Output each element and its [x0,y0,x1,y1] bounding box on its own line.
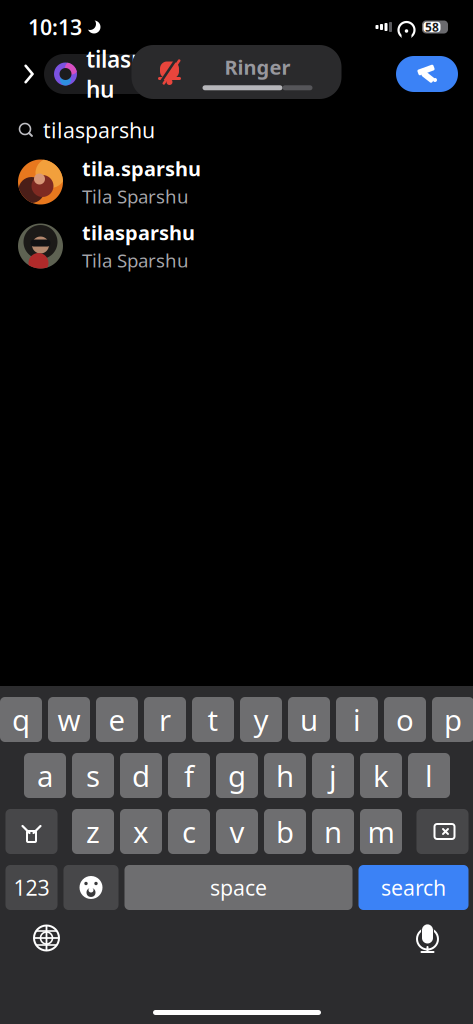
button[interactable]: f [168,753,210,798]
button[interactable]: e [96,697,138,742]
staticText: e [108,700,125,739]
button[interactable]: Delete [416,809,468,854]
staticText: m [367,812,394,851]
button[interactable]: q [0,697,42,742]
staticText: l [425,756,433,795]
staticText: tilasparshu [43,116,155,144]
button[interactable]: Dictate [405,916,449,960]
staticText: q [12,700,30,739]
button[interactable]: n [312,809,354,854]
staticText: y [253,700,268,739]
button[interactable]: w [48,697,90,742]
staticText: i [353,700,361,739]
button[interactable]: m [360,809,402,854]
button[interactable]: space [124,865,352,910]
staticText: t [207,700,218,739]
button[interactable]: Send [396,56,458,92]
button[interactable]: Emoji [63,865,118,910]
staticText: a [37,756,53,795]
staticText: v [229,812,244,851]
staticText: Ringer [224,54,290,80]
button[interactable]: tilasparshu [44,54,220,94]
staticText: x [133,812,149,851]
staticText: Tila Sparshu [82,248,189,273]
staticText: w [57,700,80,739]
staticText: Tila Sparshu [82,184,189,209]
staticText: c [182,812,196,851]
staticText: z [86,812,100,851]
staticText: j [329,756,337,795]
button[interactable]: Shift [5,809,57,854]
button[interactable]: c [168,809,210,854]
staticText: tilasparshu [86,44,186,104]
staticText: 58 [425,19,439,35]
button[interactable]: p [432,697,473,742]
button[interactable]: Change keyboard [24,916,68,960]
staticText: p [444,700,462,739]
button[interactable]: Back [14,56,44,92]
staticText: g [228,756,246,795]
staticText: k [373,756,389,795]
button[interactable]: s [72,753,114,798]
button[interactable]: a [24,753,66,798]
button[interactable]: r [144,697,186,742]
staticText: o [396,700,414,739]
button[interactable]: v [216,809,258,854]
staticText: u [300,700,318,739]
button[interactable]: y [240,697,282,742]
staticText: d [132,756,150,795]
button[interactable]: i [336,697,378,742]
button[interactable]: h [264,753,306,798]
staticText: tilasparshu [82,219,195,246]
staticText: tila.sparshu [82,155,201,182]
staticText: r [159,700,171,739]
button[interactable]: z [72,809,114,854]
staticText: search [381,873,446,902]
button[interactable]: tilasparshu [0,110,473,150]
button[interactable]: u [288,697,330,742]
button[interactable]: l [408,753,450,798]
button[interactable]: tilasparshu [0,214,473,278]
button[interactable]: k [360,753,402,798]
staticText: s [86,756,100,795]
staticText: f [184,756,194,795]
button[interactable]: t [192,697,234,742]
staticText: space [210,873,267,902]
staticText: 10:13 [28,13,82,41]
button[interactable]: 123 [5,865,57,910]
button[interactable]: search [358,865,468,910]
staticText: n [324,812,342,851]
staticText: h [276,756,294,795]
button[interactable]: o [384,697,426,742]
button[interactable]: j [312,753,354,798]
button[interactable]: b [264,809,306,854]
button[interactable]: d [120,753,162,798]
button[interactable]: x [120,809,162,854]
staticText: 123 [13,873,49,902]
button[interactable]: g [216,753,258,798]
button[interactable]: tila.sparshu [0,150,473,214]
staticText: b [276,812,294,851]
